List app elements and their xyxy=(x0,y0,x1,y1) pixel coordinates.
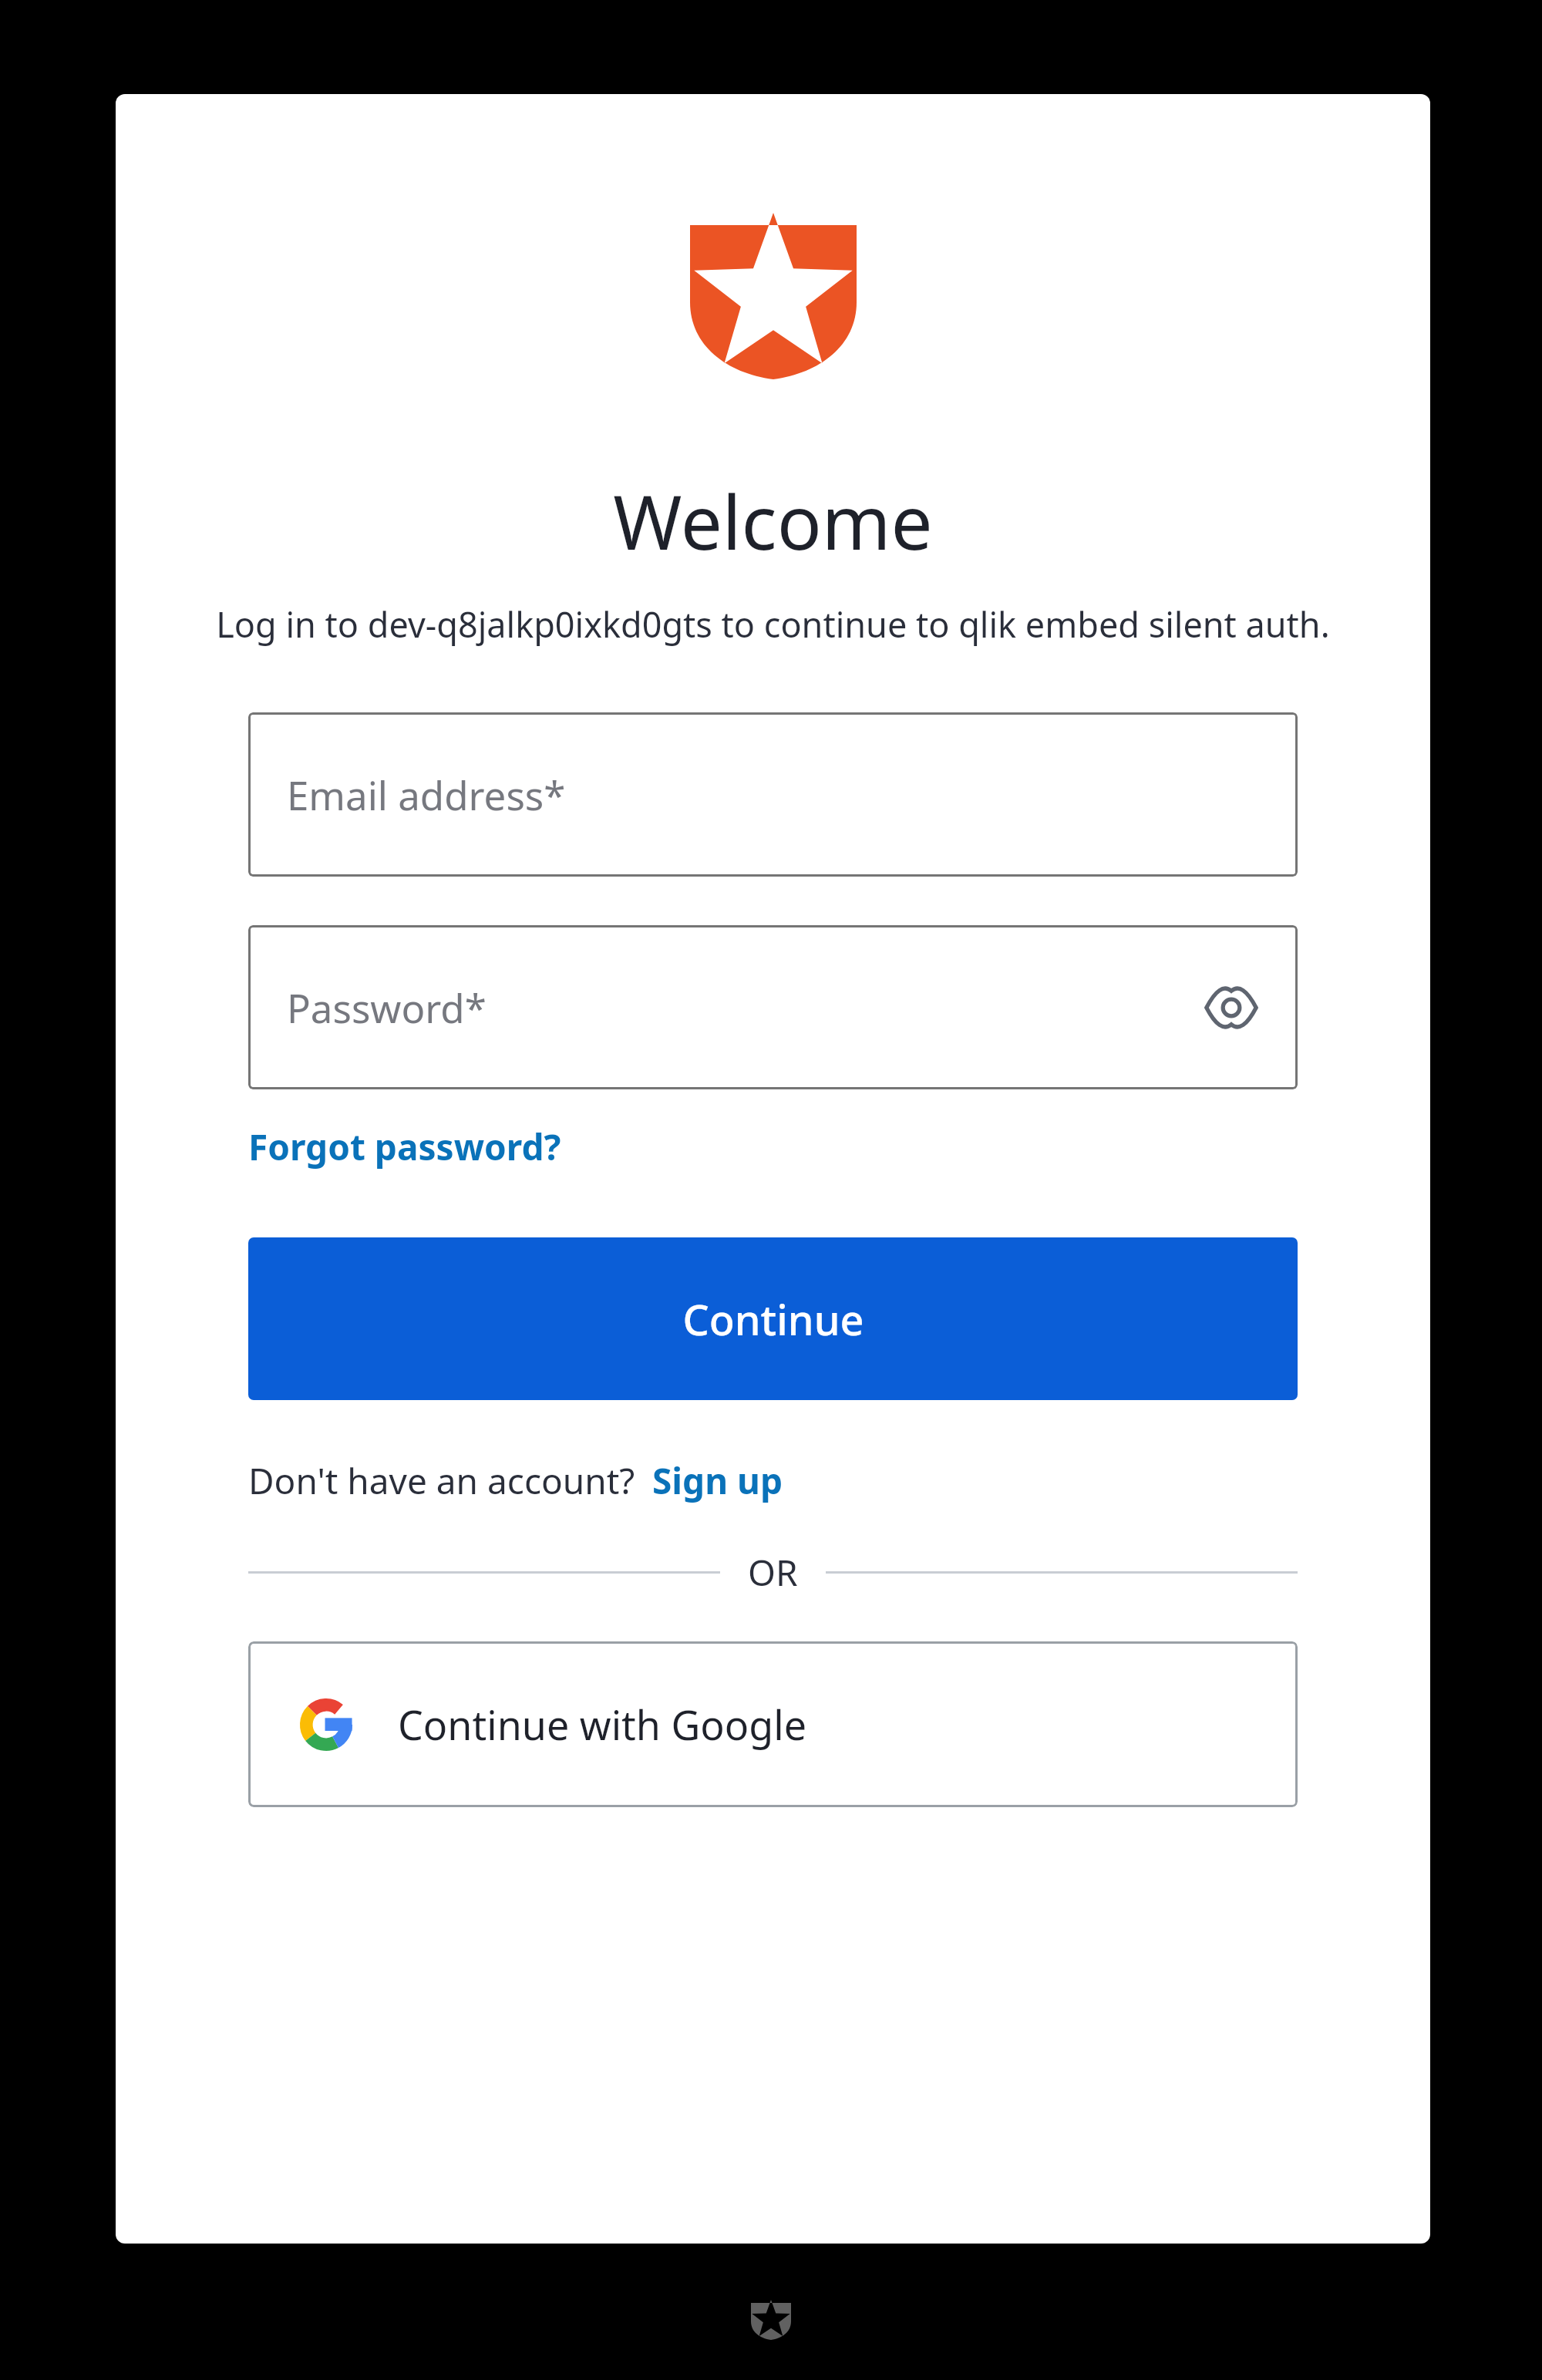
staticText: Password* xyxy=(287,981,487,1034)
staticText: OR xyxy=(748,1548,798,1597)
staticText: Email address* xyxy=(287,768,566,821)
staticText: Continue xyxy=(682,1291,864,1348)
button[interactable]: Email address xyxy=(248,712,1298,877)
button[interactable]: Continue xyxy=(248,1237,1298,1400)
staticText: Forgot password? xyxy=(248,1123,561,1171)
staticText: Continue with Google xyxy=(398,1697,806,1752)
other: Auth0 xyxy=(751,2303,791,2340)
button[interactable]: Forgot password? xyxy=(248,1118,561,1176)
staticText: Sign up xyxy=(652,1456,783,1505)
staticText: Welcome xyxy=(613,470,933,571)
button[interactable]: Password xyxy=(248,925,1298,1089)
button[interactable]: Continue with Google xyxy=(248,1641,1298,1807)
staticText: Log in to dev-q8jalkp0ixkd0gts to contin… xyxy=(216,601,1330,648)
staticText: Don't have an account? xyxy=(248,1456,635,1505)
button[interactable]: Show password xyxy=(1197,974,1265,1042)
button[interactable]: Sign up xyxy=(652,1452,783,1510)
